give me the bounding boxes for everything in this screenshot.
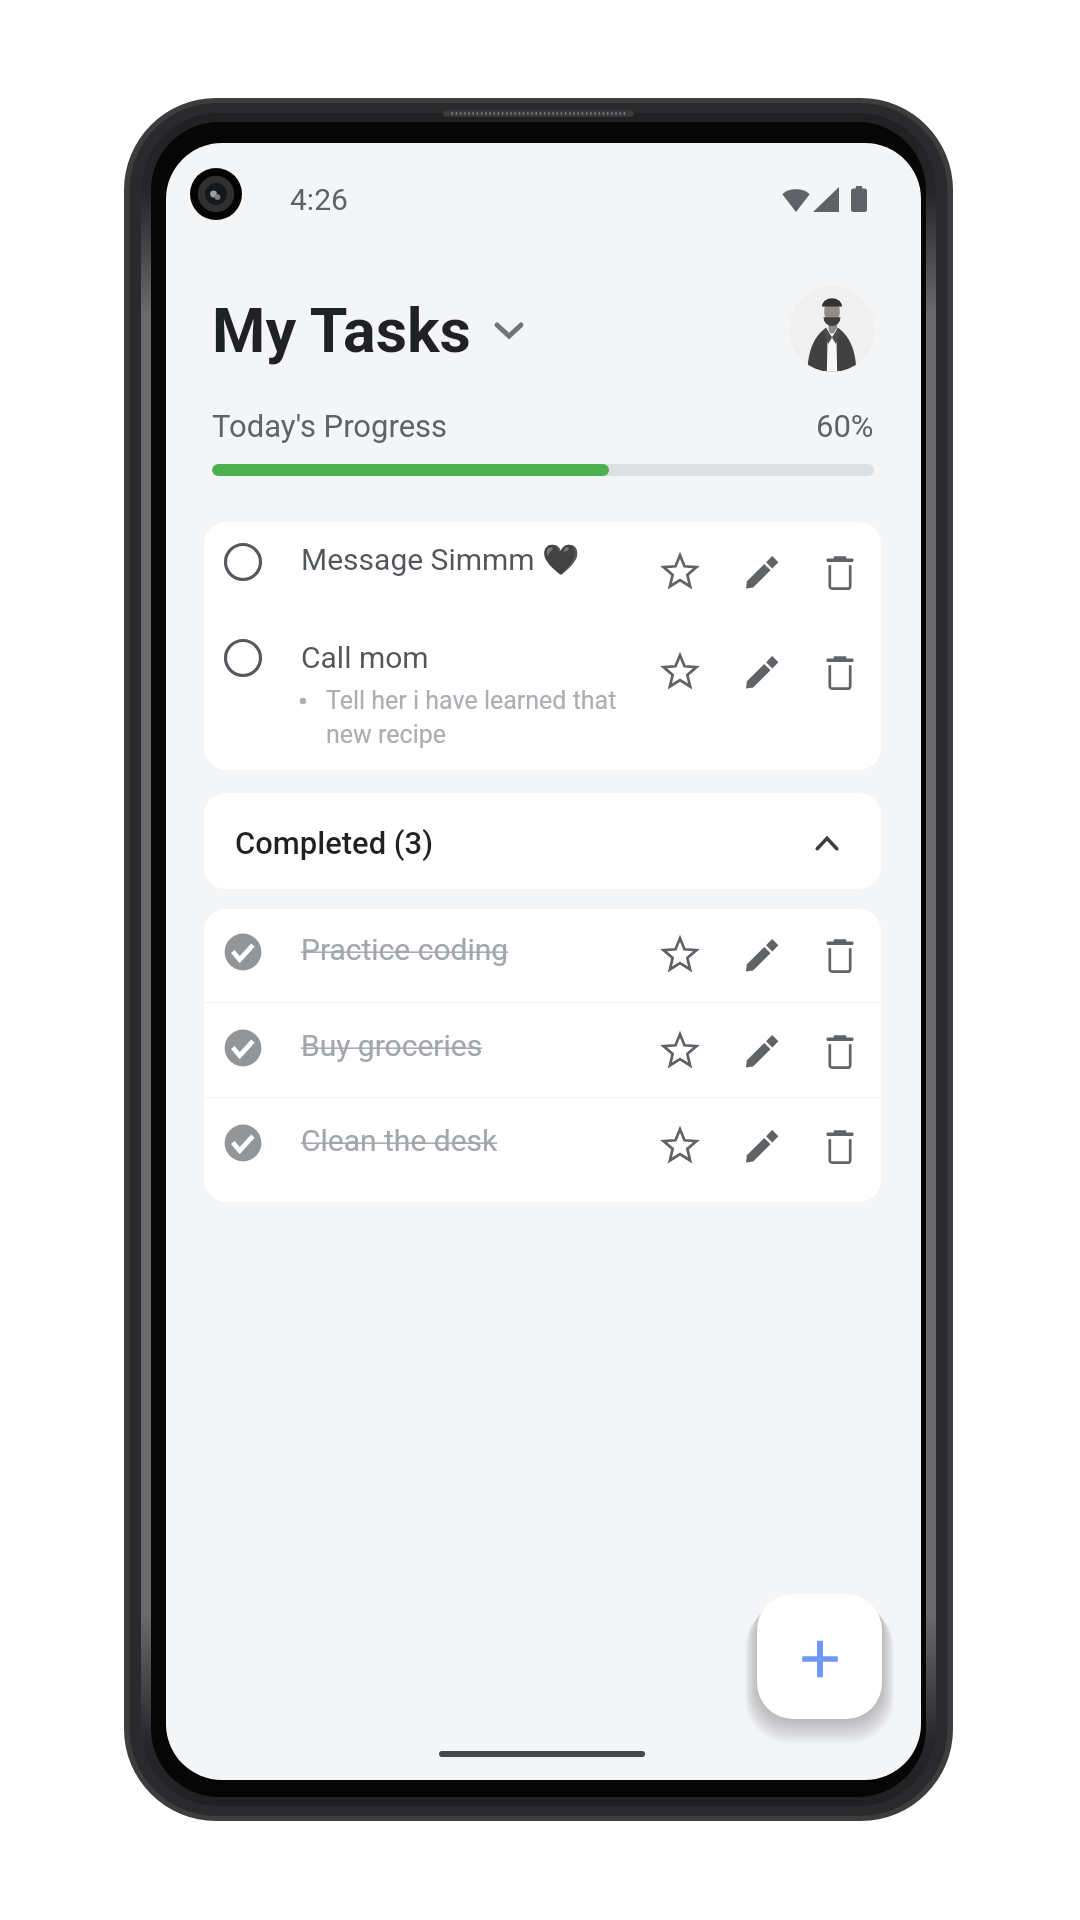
button[interactable]: Toggle task <box>219 1024 267 1072</box>
button[interactable]: Toggle task <box>219 928 267 976</box>
button[interactable]: Star <box>660 650 700 690</box>
button[interactable]: Edit <box>741 933 781 973</box>
button[interactable]: Edit <box>741 1029 781 1069</box>
button[interactable]: Delete <box>820 1124 860 1164</box>
staticText: Tell her i have learned that new recipe <box>326 686 617 749</box>
staticText: Clean the desk <box>301 1123 498 1158</box>
staticText: Completed (3) <box>235 825 434 861</box>
staticText: 4:26 <box>290 182 348 217</box>
button[interactable]: Edit <box>741 1124 781 1164</box>
staticText: Today's Progress <box>212 408 448 444</box>
button[interactable]: Add task <box>757 1594 882 1719</box>
staticText: Message Simmm 🖤 <box>301 542 580 577</box>
button[interactable]: My Tasks <box>212 295 471 366</box>
button[interactable]: Edit <box>741 550 781 590</box>
staticText: Buy groceries <box>301 1028 483 1063</box>
button[interactable]: Star <box>660 1124 700 1164</box>
button[interactable]: Star <box>660 550 700 590</box>
button[interactable]: Toggle task <box>219 538 267 586</box>
button[interactable]: Toggle task <box>219 634 267 682</box>
staticText: Call mom <box>301 640 429 675</box>
button[interactable]: Completed (3) <box>204 793 881 889</box>
button[interactable]: Star <box>660 1029 700 1069</box>
button[interactable]: Edit <box>741 650 781 690</box>
staticText: Practice coding <box>301 932 509 967</box>
button[interactable]: Delete <box>820 1029 860 1069</box>
button[interactable]: Collapse <box>809 828 845 858</box>
button[interactable]: Change list <box>494 317 524 343</box>
button[interactable]: Profile <box>789 286 875 372</box>
button[interactable]: Delete <box>820 933 860 973</box>
button[interactable]: Star <box>660 933 700 973</box>
staticText: My Tasks <box>212 295 471 366</box>
button[interactable]: Delete <box>820 550 860 590</box>
button[interactable]: Toggle task <box>219 1119 267 1167</box>
staticText: 60% <box>816 408 874 444</box>
button[interactable]: Delete <box>820 650 860 690</box>
